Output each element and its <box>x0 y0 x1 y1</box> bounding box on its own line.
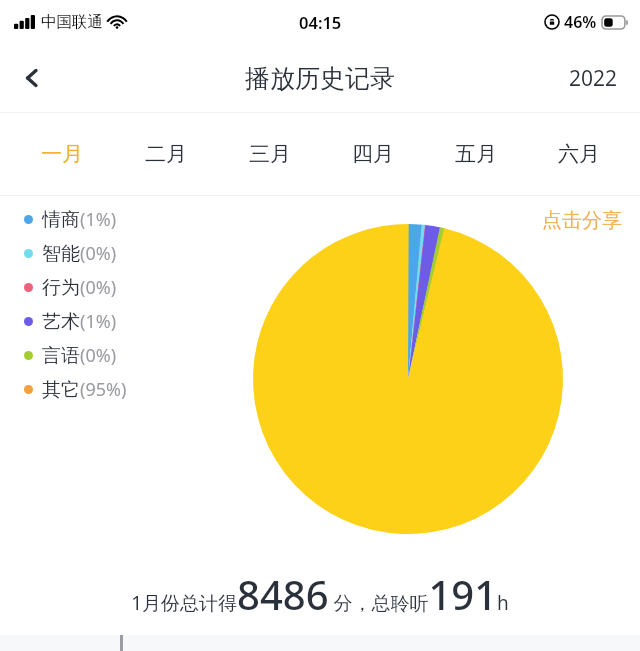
staticText: 情商(1%) <box>42 207 117 232</box>
staticText: 言语(0%) <box>42 343 117 368</box>
button[interactable]: 言语(0%) <box>24 338 117 372</box>
button[interactable]: 点击分享 <box>538 204 626 237</box>
staticText: 六月 <box>558 141 600 167</box>
button[interactable]: 2022 <box>565 58 622 99</box>
button[interactable]: 智能(0%) <box>24 236 117 270</box>
button[interactable]: 其它(95%) <box>24 372 127 406</box>
staticText: 点击分享 <box>542 208 622 233</box>
staticText: 中国联通 <box>41 12 103 32</box>
button[interactable]: 情商(1%) <box>24 202 117 236</box>
staticText: 三月 <box>249 141 291 167</box>
button[interactable]: 艺术(1%) <box>24 304 117 338</box>
staticText: 五月 <box>455 141 497 167</box>
button[interactable]: 一月 <box>10 113 114 195</box>
staticText: 2022 <box>569 64 618 93</box>
staticText: 46% <box>564 11 597 33</box>
staticText: 1月份总计得8486 分，总聆听191h <box>131 567 509 621</box>
staticText: 播放历史记录 <box>245 63 395 94</box>
staticText: 一月 <box>41 141 83 167</box>
button[interactable]: 行为(0%) <box>24 270 117 304</box>
staticText: 行为(0%) <box>42 275 117 300</box>
button[interactable]: 五月 <box>424 113 527 195</box>
button[interactable]: Back <box>6 52 58 104</box>
button[interactable]: 二月 <box>114 113 218 195</box>
button[interactable]: 六月 <box>527 113 630 195</box>
staticText: 四月 <box>352 141 394 167</box>
button[interactable]: 三月 <box>218 113 321 195</box>
staticText: 04:15 <box>299 11 342 33</box>
staticText: 其它(95%) <box>42 377 127 402</box>
staticText: 智能(0%) <box>42 241 117 266</box>
button[interactable]: 四月 <box>321 113 424 195</box>
staticText: 艺术(1%) <box>42 309 117 334</box>
staticText: 二月 <box>145 141 187 167</box>
